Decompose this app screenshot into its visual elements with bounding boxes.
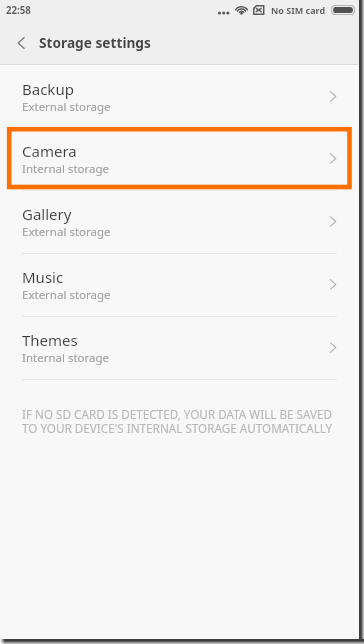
staticText: Camera xyxy=(22,141,77,161)
staticText: Music xyxy=(22,267,64,287)
staticText: External storage xyxy=(22,287,111,303)
button[interactable]: Camera xyxy=(0,128,359,191)
staticText: Internal storage xyxy=(22,161,110,177)
staticText: IF NO SD CARD IS DETECTED, YOUR DATA WIL… xyxy=(22,406,333,437)
staticText: Gallery xyxy=(22,204,72,224)
staticText: Backup xyxy=(22,79,74,99)
staticText: No SIM card xyxy=(271,4,326,16)
staticText: Themes xyxy=(22,330,78,350)
staticText: Internal storage xyxy=(22,350,110,366)
button[interactable]: Music xyxy=(0,254,359,317)
staticText: External storage xyxy=(22,224,111,240)
button[interactable]: Gallery xyxy=(0,191,359,254)
staticText: External storage xyxy=(22,99,111,115)
button[interactable]: Back xyxy=(0,20,40,65)
staticText: 22:58 xyxy=(6,4,31,17)
button[interactable]: Backup xyxy=(0,67,359,128)
staticText: Storage settings xyxy=(39,33,151,52)
button[interactable]: Themes xyxy=(0,317,359,380)
